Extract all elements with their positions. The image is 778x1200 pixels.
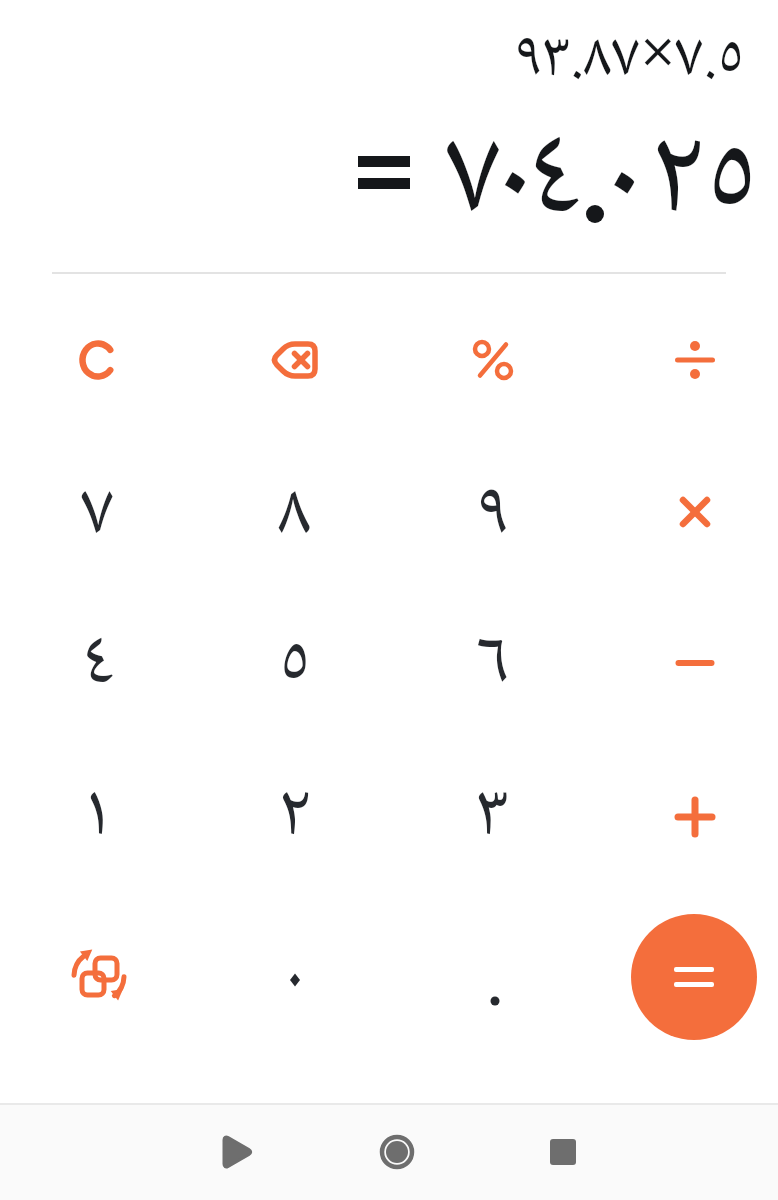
button[interactable] [425, 931, 565, 1071]
button[interactable] [631, 914, 757, 1040]
staticText: ‭٩٣.٨٧×٧.٥‬ [514, 8, 745, 115]
button[interactable] [213, 1128, 261, 1176]
button[interactable]: ٥ [225, 591, 365, 731]
staticText: ٩ [476, 454, 510, 580]
button[interactable] [625, 593, 765, 733]
button[interactable] [373, 1128, 421, 1176]
staticText: ٧٠٤ [446, 78, 566, 289]
button[interactable]: ٢ [225, 743, 365, 883]
button[interactable] [29, 906, 169, 1046]
staticText: ٠٢٥ [595, 78, 759, 289]
button[interactable]: ٨ [225, 442, 365, 582]
staticText: ٧ [81, 454, 115, 580]
staticText: ٦ [476, 603, 510, 729]
staticText: ٣ [476, 755, 510, 881]
button[interactable]: ٤ [28, 591, 168, 731]
button[interactable] [28, 290, 168, 430]
button[interactable] [225, 290, 365, 430]
button[interactable]: ١ [28, 743, 168, 883]
staticText: ٥ [278, 603, 312, 729]
button[interactable] [625, 442, 765, 582]
staticText: ٨ [278, 454, 312, 580]
staticText: ١ [81, 755, 115, 881]
button[interactable]: ٩ [423, 442, 563, 582]
button[interactable]: ٦ [423, 591, 563, 731]
button[interactable] [423, 290, 563, 430]
button[interactable] [625, 290, 765, 430]
button[interactable]: ٧ [28, 442, 168, 582]
button[interactable]: ٣ [423, 743, 563, 883]
button[interactable] [625, 747, 765, 887]
button[interactable] [225, 910, 365, 1050]
staticText: ٤ [81, 603, 115, 729]
button[interactable] [539, 1128, 587, 1176]
staticText: ٢ [278, 755, 312, 881]
